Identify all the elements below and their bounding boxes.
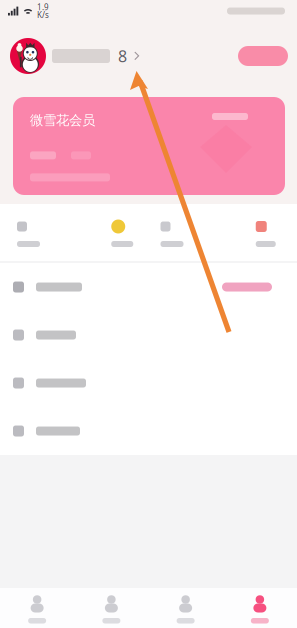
button[interactable]: Open membership bbox=[238, 46, 288, 66]
staticText: 1.9 bbox=[37, 2, 49, 12]
button[interactable]: Tab bbox=[74, 588, 148, 623]
button[interactable]: Quick action bbox=[148, 204, 223, 261]
staticText: 8 bbox=[118, 45, 127, 67]
button[interactable]: Setting bbox=[0, 359, 297, 407]
button[interactable]: Setting bbox=[0, 311, 297, 359]
button[interactable]: 8 bbox=[10, 38, 139, 74]
button[interactable]: Membership card bbox=[0, 97, 297, 195]
button[interactable]: Setting bbox=[0, 407, 297, 455]
button[interactable]: Tab bbox=[148, 588, 223, 623]
button[interactable]: Tab bbox=[0, 588, 74, 623]
staticText: 微雪花会员 bbox=[30, 112, 95, 128]
button[interactable]: Profile tab bbox=[223, 588, 297, 623]
button[interactable]: Quick action bbox=[74, 204, 148, 261]
staticText: K/s bbox=[37, 9, 49, 20]
button[interactable]: Quick action bbox=[223, 204, 297, 261]
button[interactable]: Setting bbox=[0, 263, 297, 311]
button[interactable]: Quick action bbox=[0, 204, 74, 261]
